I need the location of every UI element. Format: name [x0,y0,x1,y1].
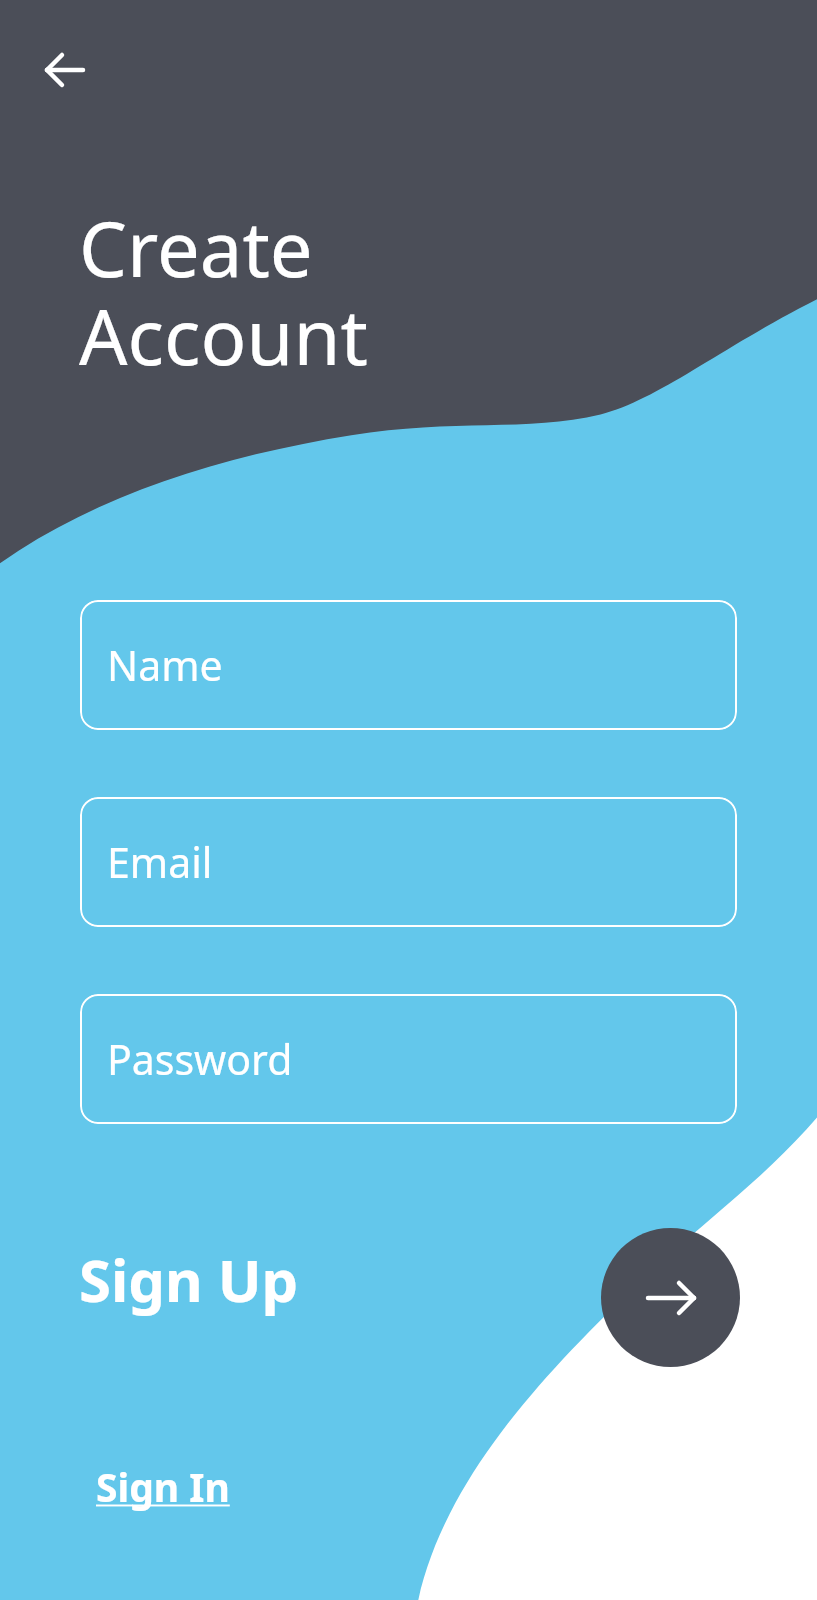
button[interactable]: Sign Up [79,1240,299,1319]
button[interactable]: Name [80,600,737,730]
button[interactable]: Password [80,994,737,1124]
staticText: Email [107,834,213,890]
staticText: Create Account [79,196,368,387]
staticText: Password [107,1031,293,1087]
button[interactable]: Sign In [96,1460,230,1513]
staticText: Name [107,637,223,693]
button[interactable]: Email [80,797,737,927]
button[interactable]: Back [30,42,86,98]
button[interactable]: Continue [601,1228,740,1367]
